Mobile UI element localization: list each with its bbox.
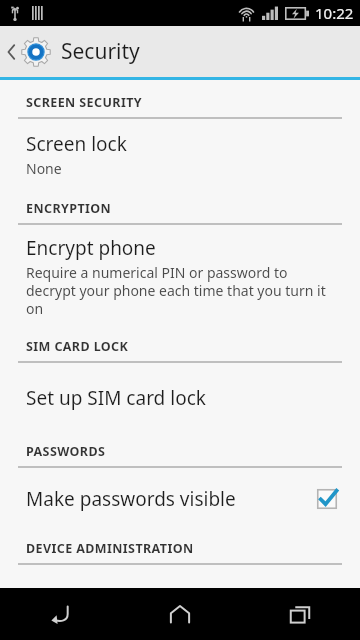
button[interactable]: Up, Security: [0, 26, 360, 77]
staticText: SCREEN SECURITY: [26, 94, 142, 111]
button[interactable]: Home: [120, 588, 240, 640]
staticText: Screen lock: [26, 131, 127, 157]
button[interactable]: Set up SIM card lock: [0, 363, 360, 435]
other: Make passwords visible checkbox: [316, 488, 338, 510]
staticText: None: [26, 159, 62, 178]
staticText: Encrypt phone: [26, 235, 156, 261]
button[interactable]: Make passwords visible: [0, 468, 360, 532]
button[interactable]: Screen lock: [0, 119, 360, 192]
staticText: Set up SIM card lock: [26, 385, 206, 411]
button[interactable]: Encrypt phone: [0, 225, 360, 330]
staticText: DEVICE ADMINISTRATION: [26, 540, 194, 557]
staticText: ENCRYPTION: [26, 200, 112, 217]
staticText: PASSWORDS: [26, 443, 106, 460]
staticText: Make passwords visible: [26, 486, 316, 512]
staticText: Security: [61, 37, 140, 66]
staticText: Require a numerical PIN or password to d…: [26, 263, 340, 318]
staticText: 10:22: [315, 3, 354, 23]
button[interactable]: Back: [0, 588, 120, 640]
button[interactable]: Recent apps: [240, 588, 360, 640]
staticText: SIM CARD LOCK: [26, 338, 129, 355]
